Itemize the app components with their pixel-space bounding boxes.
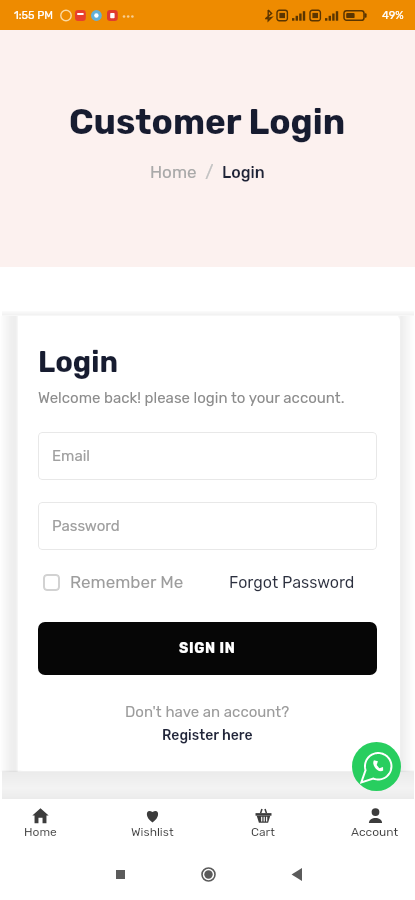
staticText: Remember Me [70,572,184,592]
staticText: Customer Login [69,101,346,142]
staticText: Home [24,825,57,839]
staticText: SIGN IN [179,640,236,657]
staticText: Welcome back! please login to your accou… [38,389,345,407]
button[interactable]: Forgot Password [229,573,355,592]
button[interactable]: Email [38,432,377,480]
staticText: Cart [251,825,275,839]
button[interactable]: Account [335,799,415,847]
button[interactable]: Chat on WhatsApp [352,742,401,791]
staticText: Account [351,825,399,839]
button[interactable]: Home [150,162,197,182]
button[interactable]: Register here [162,727,253,744]
button[interactable]: Recent apps [97,851,143,897]
staticText: 49% [382,9,404,22]
staticText: Email [52,447,90,465]
button[interactable]: Home [0,799,80,847]
staticText: Login [222,163,265,182]
button[interactable]: Password [38,502,377,550]
button[interactable]: Back [273,851,319,897]
staticText: 1:55 PM [14,9,54,22]
button[interactable]: Wishlist [112,799,192,847]
staticText: Login [38,345,119,379]
staticText: Wishlist [131,825,174,839]
button[interactable]: Cart [223,799,303,847]
button[interactable]: SIGN IN [38,622,377,675]
staticText: Password [52,517,120,535]
staticText: / [197,162,222,182]
staticText: Don't have an account? [125,703,290,721]
button[interactable]: Remember Me [38,572,207,592]
button[interactable]: Home [185,851,231,897]
